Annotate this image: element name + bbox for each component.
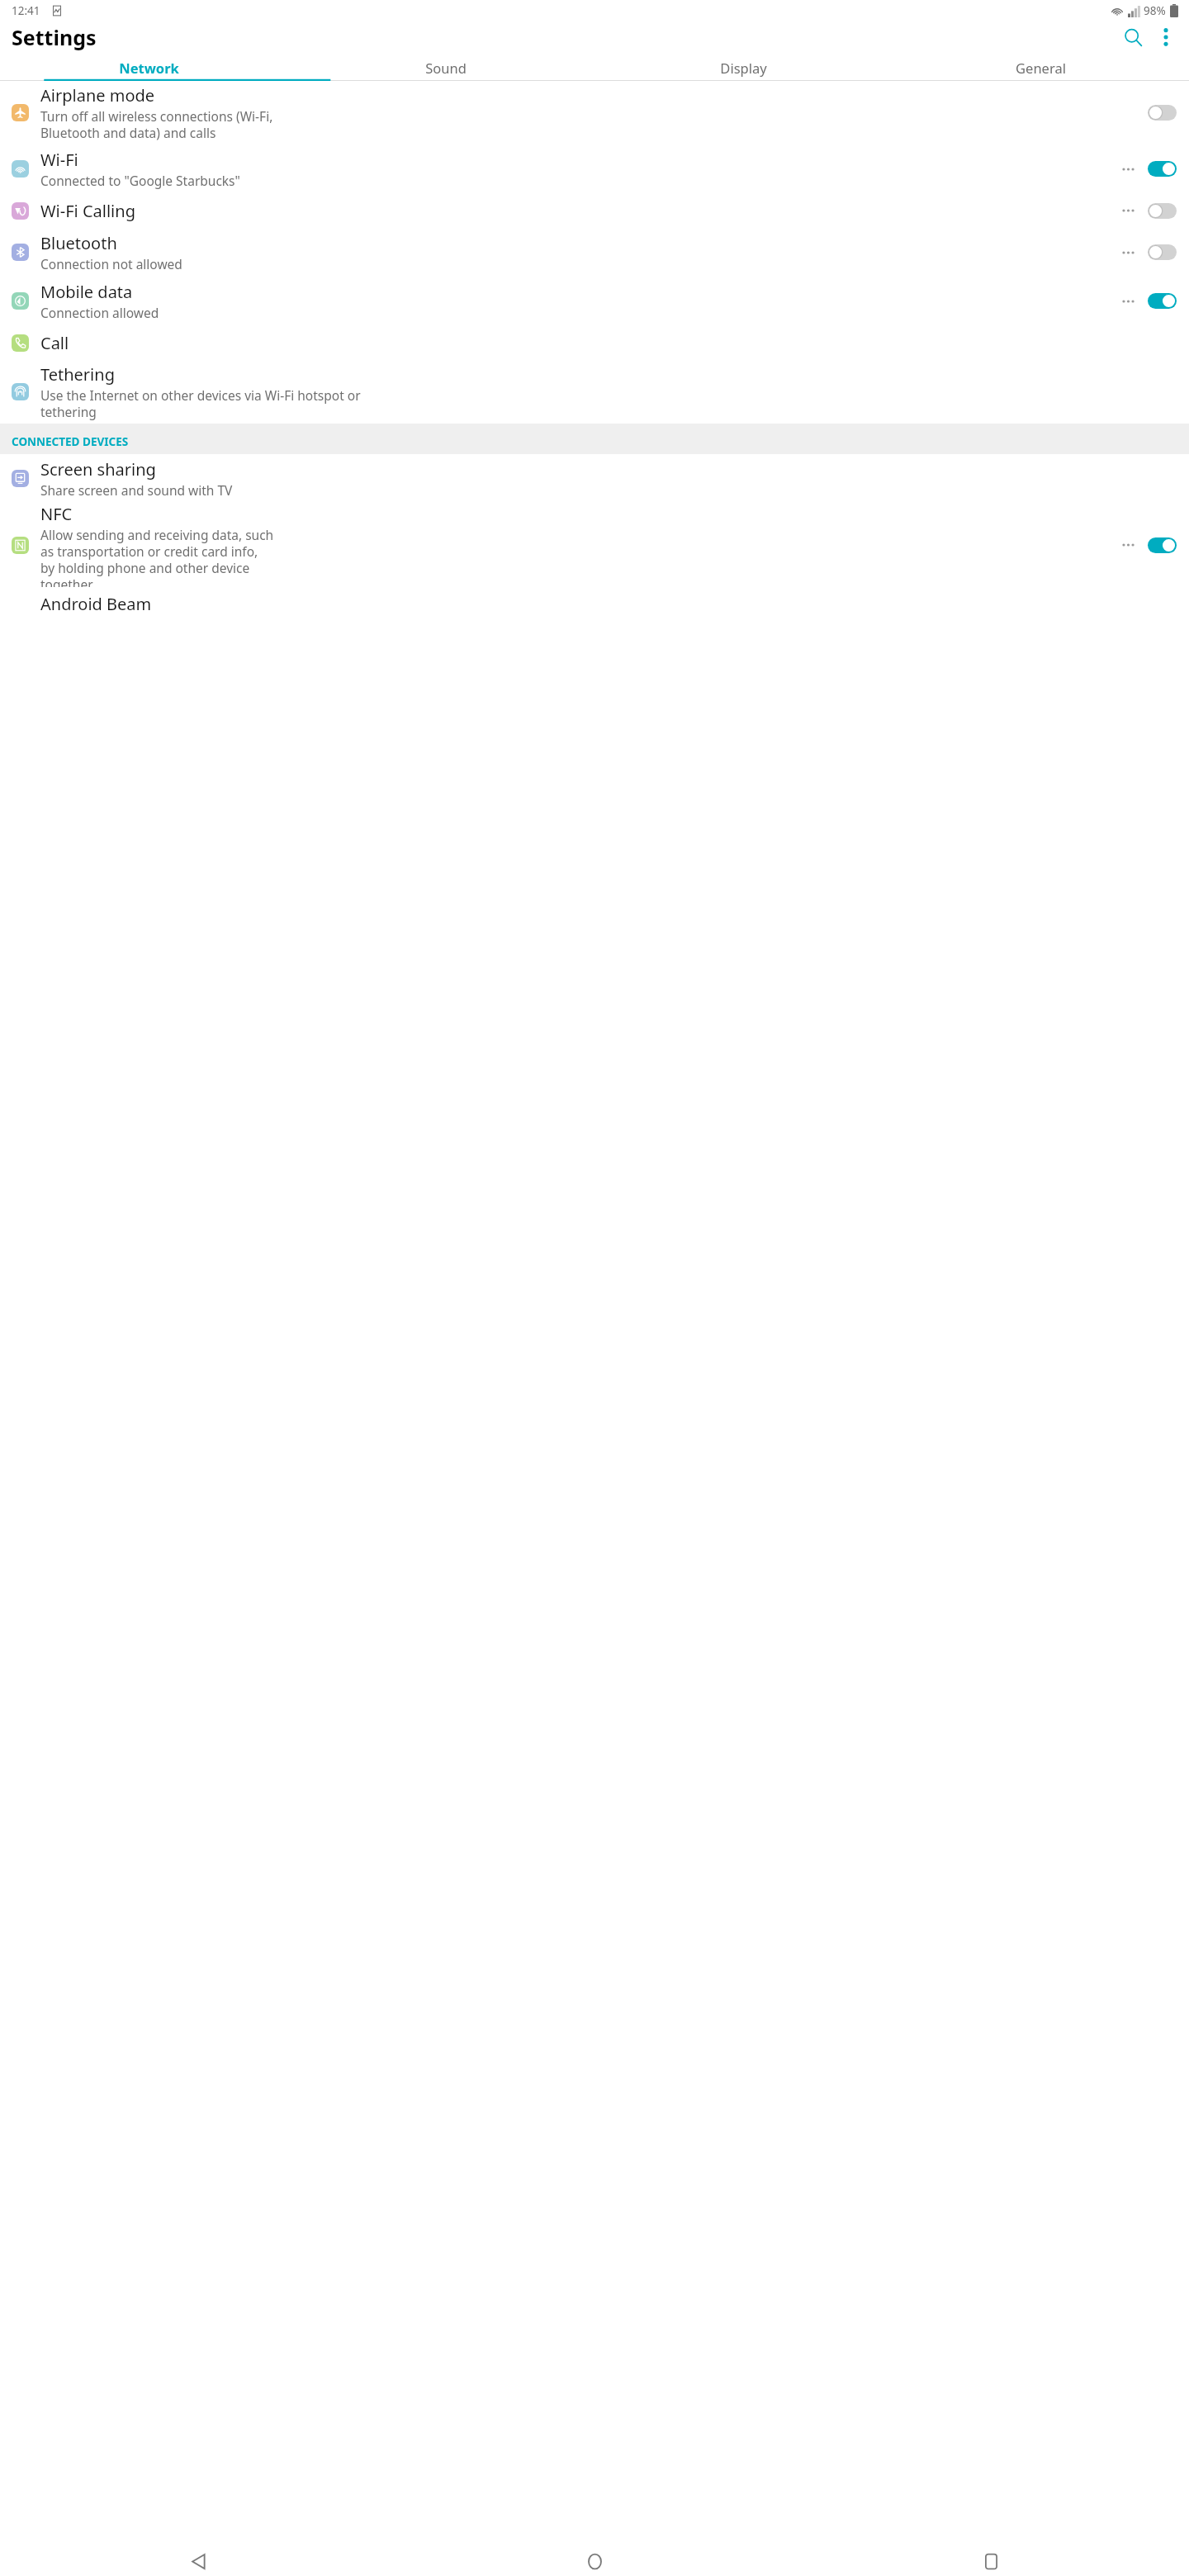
button[interactable]: Airplane mode: [0, 81, 1189, 144]
staticText: Wi-Fi Calling: [40, 200, 135, 222]
button[interactable]: Bluetooth switch: [1148, 244, 1177, 260]
staticText: Android Beam: [40, 593, 152, 612]
button[interactable]: NFC switch: [1148, 537, 1177, 553]
staticText: Tethering: [40, 363, 115, 386]
button[interactable]: Screen sharing: [0, 454, 1189, 503]
button[interactable]: Network: [0, 54, 297, 81]
staticText: General: [1016, 59, 1066, 77]
staticText: Use the Internet on other devices via Wi…: [40, 386, 361, 420]
staticText: Bluetooth: [40, 232, 117, 254]
button[interactable]: Wi-Fi switch: [1148, 161, 1177, 177]
button[interactable]: Bluetooth options: [1117, 236, 1139, 269]
staticText: Display: [720, 59, 767, 77]
button[interactable]: Tethering: [0, 360, 1189, 424]
button[interactable]: Wi-Fi Calling switch: [1148, 203, 1177, 219]
staticText: Mobile data: [40, 281, 133, 303]
button[interactable]: Wi-Fi Calling: [0, 193, 1189, 228]
button[interactable]: Search: [1116, 21, 1149, 54]
button[interactable]: Mobile data switch: [1148, 293, 1177, 309]
staticText: Turn off all wireless connections (Wi-Fi…: [40, 107, 273, 141]
staticText: Sound: [425, 59, 467, 77]
button[interactable]: Bluetooth: [0, 228, 1189, 277]
button[interactable]: Wi-Fi: [0, 144, 1189, 193]
button[interactable]: More options: [1149, 21, 1182, 54]
staticText: Connection not allowed: [40, 255, 182, 272]
button[interactable]: Display: [594, 54, 892, 81]
button[interactable]: Recents: [793, 2546, 1189, 2576]
staticText: 98%: [1144, 3, 1166, 18]
staticText: Settings: [12, 23, 97, 51]
button[interactable]: Call: [0, 325, 1189, 360]
staticText: Wi-Fi: [40, 149, 78, 171]
button[interactable]: Wi-Fi Calling options: [1117, 194, 1139, 227]
staticText: Connected to "Google Starbucks": [40, 172, 240, 189]
button[interactable]: Airplane mode switch: [1148, 105, 1177, 121]
button[interactable]: Back: [0, 2546, 396, 2576]
staticText: 12:41: [12, 3, 40, 18]
staticText: Call: [40, 332, 69, 354]
staticText: Allow sending and receiving data, such a…: [40, 526, 274, 587]
staticText: Share screen and sound with TV: [40, 481, 233, 499]
button[interactable]: NFC options: [1117, 528, 1139, 561]
button[interactable]: General: [892, 54, 1189, 81]
button[interactable]: Mobile data options: [1117, 285, 1139, 318]
staticText: Connection allowed: [40, 304, 159, 321]
button[interactable]: Mobile data: [0, 277, 1189, 325]
button[interactable]: NFC: [0, 503, 1189, 587]
staticText: Network: [119, 59, 179, 77]
button[interactable]: Android Beam: [0, 587, 1189, 612]
button[interactable]: Wi-Fi options: [1117, 153, 1139, 186]
staticText: CONNECTED DEVICES: [12, 434, 129, 449]
staticText: Airplane mode: [40, 84, 155, 107]
button[interactable]: Home: [396, 2546, 793, 2576]
button[interactable]: Sound: [297, 54, 594, 81]
staticText: NFC: [40, 503, 73, 525]
staticText: Screen sharing: [40, 458, 156, 481]
